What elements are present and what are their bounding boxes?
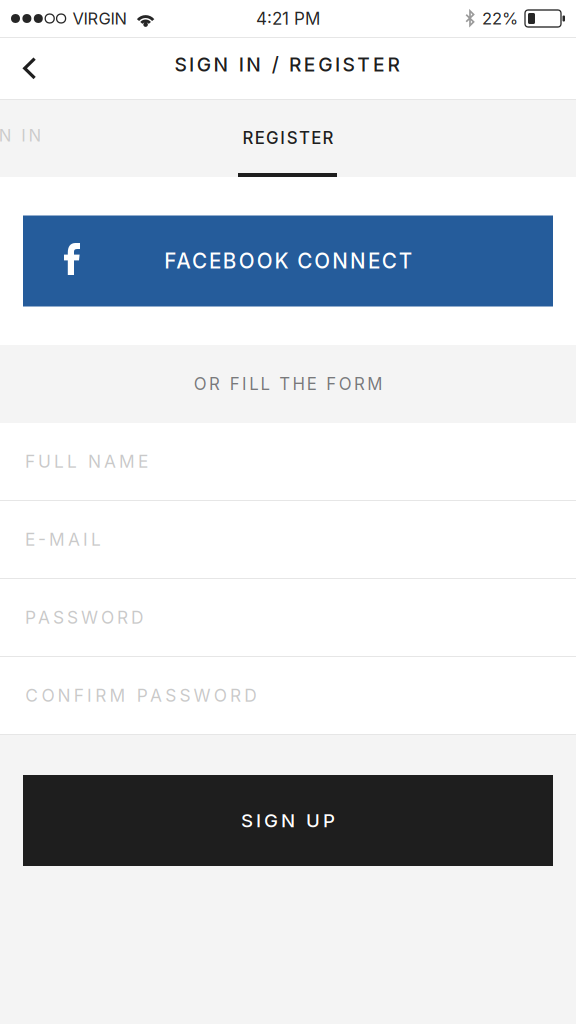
- staticText: FULL NAME: [17, 451, 156, 472]
- button[interactable]: CONFIRM PASSWORD: [0, 657, 576, 735]
- staticText: E-MAIL: [17, 529, 109, 550]
- button[interactable]: FULL NAME: [0, 423, 576, 501]
- staticText: SIGN IN: [0, 125, 49, 146]
- staticText: REGISTER: [237, 128, 339, 148]
- staticText: SIGN IN / REGISTER: [167, 53, 407, 76]
- staticText: SIGN UP: [233, 809, 343, 832]
- button[interactable]: Back: [0, 38, 70, 99]
- button[interactable]: SIGN IN: [0, 100, 156, 177]
- staticText: OR FILL THE FORM: [186, 374, 390, 394]
- button[interactable]: SIGN UP: [23, 775, 553, 866]
- button[interactable]: PASSWORD: [0, 579, 576, 657]
- button[interactable]: E-MAIL: [0, 501, 576, 579]
- staticText: FACEBOOK CONNECT: [157, 248, 419, 273]
- staticText: CONFIRM PASSWORD: [17, 685, 265, 706]
- button[interactable]: FACEBOOK CONNECT: [23, 215, 553, 306]
- staticText: 4:21 PM: [251, 8, 325, 29]
- staticText: PASSWORD: [17, 607, 152, 628]
- staticText: VIRGIN: [68, 8, 132, 28]
- button[interactable]: REGISTER: [188, 100, 388, 177]
- staticText: 22%: [477, 8, 523, 28]
